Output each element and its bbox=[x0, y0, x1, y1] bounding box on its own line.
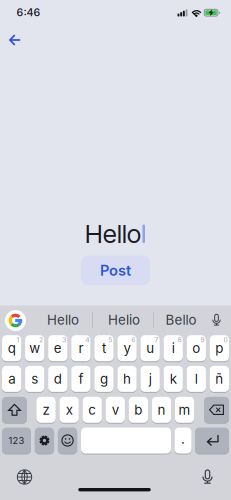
button[interactable]: m bbox=[175, 397, 194, 423]
staticText: g bbox=[100, 371, 108, 387]
staticText: d bbox=[54, 371, 62, 387]
button[interactable]: x bbox=[59, 397, 79, 423]
button[interactable]: Back bbox=[2, 28, 26, 51]
staticText: 6:46 bbox=[16, 6, 40, 19]
button[interactable]: Hello bbox=[34, 307, 92, 333]
staticText: y bbox=[123, 340, 130, 356]
button[interactable]: c bbox=[83, 397, 102, 423]
staticText: q bbox=[8, 340, 16, 356]
staticText: a bbox=[8, 371, 15, 387]
button[interactable]: p bbox=[210, 335, 229, 361]
button[interactable]: Return bbox=[195, 427, 229, 453]
button[interactable]: v bbox=[106, 397, 125, 423]
button[interactable]: d bbox=[48, 366, 67, 392]
button[interactable]: Space bbox=[81, 427, 171, 453]
button[interactable]: Bello bbox=[157, 307, 205, 333]
button[interactable]: k bbox=[164, 366, 183, 392]
staticText: b bbox=[134, 402, 142, 418]
staticText: k bbox=[170, 371, 177, 387]
staticText: 1 bbox=[16, 336, 19, 344]
button[interactable]: Voice typing bbox=[208, 310, 225, 330]
staticText: 8 bbox=[177, 336, 181, 344]
button[interactable]: f bbox=[71, 366, 90, 392]
staticText: Hello bbox=[85, 218, 141, 249]
staticText: 6 bbox=[131, 336, 135, 344]
staticText: p bbox=[215, 340, 223, 356]
button[interactable]: u bbox=[140, 335, 160, 361]
staticText: 123 bbox=[8, 435, 24, 446]
button[interactable]: Helio bbox=[95, 307, 153, 333]
staticText: t bbox=[102, 340, 106, 356]
button[interactable]: Settings bbox=[35, 427, 54, 453]
button[interactable]: Google bbox=[5, 310, 26, 331]
staticText: h bbox=[123, 371, 131, 387]
button[interactable]: w bbox=[25, 335, 44, 361]
staticText: Post bbox=[100, 262, 131, 279]
button[interactable]: . bbox=[174, 427, 191, 453]
button[interactable]: b bbox=[129, 397, 148, 423]
button[interactable]: h bbox=[117, 366, 137, 392]
staticText: Helio bbox=[108, 312, 140, 328]
staticText: 2 bbox=[39, 336, 43, 344]
staticText: j bbox=[149, 371, 152, 387]
staticText: 4 bbox=[85, 336, 89, 344]
staticText: 5 bbox=[108, 336, 112, 344]
staticText: ñ bbox=[215, 371, 223, 387]
staticText: z bbox=[42, 402, 49, 418]
button[interactable]: s bbox=[25, 366, 44, 392]
staticText: 3 bbox=[62, 336, 66, 344]
button[interactable]: r bbox=[71, 335, 90, 361]
staticText: o bbox=[192, 340, 200, 356]
button[interactable]: o bbox=[187, 335, 206, 361]
button[interactable]: l bbox=[187, 366, 206, 392]
staticText: . bbox=[181, 431, 185, 447]
staticText: x bbox=[66, 402, 73, 418]
staticText: s bbox=[31, 371, 38, 387]
staticText: 7 bbox=[154, 336, 158, 344]
button[interactable]: Next keyboard bbox=[12, 464, 37, 489]
button[interactable]: a bbox=[2, 366, 21, 392]
staticText: 0 bbox=[224, 336, 228, 344]
staticText: i bbox=[172, 340, 175, 356]
staticText: f bbox=[78, 371, 83, 387]
button[interactable]: g bbox=[94, 366, 114, 392]
button[interactable]: Shift bbox=[2, 397, 27, 423]
staticText: c bbox=[88, 402, 96, 418]
staticText: 9 bbox=[200, 336, 204, 344]
button[interactable]: 123 bbox=[2, 427, 31, 453]
button[interactable]: ñ bbox=[210, 366, 229, 392]
button[interactable]: j bbox=[140, 366, 160, 392]
staticText: v bbox=[112, 402, 119, 418]
button[interactable]: e bbox=[48, 335, 67, 361]
button[interactable]: Post bbox=[81, 256, 150, 285]
staticText: Bello bbox=[165, 312, 196, 328]
button[interactable]: t bbox=[94, 335, 114, 361]
button[interactable]: y bbox=[117, 335, 137, 361]
button[interactable]: Dictation bbox=[195, 464, 220, 490]
staticText: r bbox=[78, 340, 83, 356]
button[interactable]: Emoji bbox=[58, 427, 77, 453]
button[interactable]: n bbox=[152, 397, 171, 423]
staticText: l bbox=[195, 371, 198, 387]
staticText: n bbox=[157, 402, 165, 418]
staticText: u bbox=[146, 340, 154, 356]
button[interactable]: i bbox=[164, 335, 183, 361]
button[interactable]: q bbox=[2, 335, 21, 361]
staticText: Hello bbox=[47, 312, 79, 328]
staticText: e bbox=[54, 340, 62, 356]
staticText: m bbox=[178, 402, 190, 418]
button[interactable]: z bbox=[36, 397, 56, 423]
button[interactable]: Delete bbox=[204, 397, 229, 423]
staticText: w bbox=[29, 340, 40, 356]
